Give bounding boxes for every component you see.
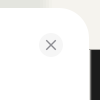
button[interactable]: Close [39, 33, 63, 57]
